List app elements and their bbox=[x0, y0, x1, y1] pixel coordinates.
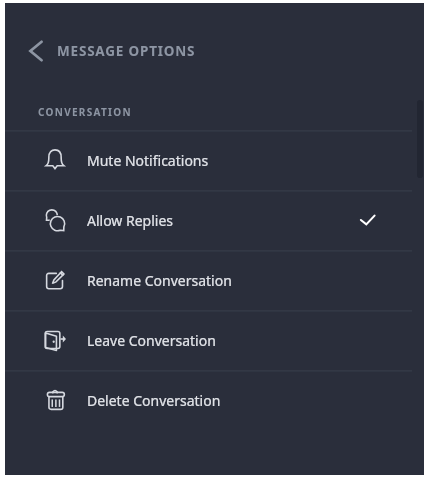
button[interactable]: Back bbox=[17, 34, 55, 68]
staticText: Allow Replies bbox=[87, 211, 174, 230]
staticText: Mute Notifications bbox=[87, 151, 209, 170]
button[interactable]: Allow Replies bbox=[5, 190, 424, 250]
button[interactable]: Leave Conversation bbox=[5, 310, 424, 370]
button[interactable]: Delete Conversation bbox=[5, 370, 424, 430]
staticText: Leave Conversation bbox=[87, 331, 216, 350]
button[interactable]: Rename Conversation bbox=[5, 250, 424, 310]
staticText: Rename Conversation bbox=[87, 271, 232, 290]
staticText: Delete Conversation bbox=[87, 391, 221, 410]
other: Enabled bbox=[356, 209, 378, 231]
button[interactable]: Mute Notifications bbox=[5, 130, 424, 190]
staticText: CONVERSATION bbox=[38, 105, 132, 119]
staticText: MESSAGE OPTIONS bbox=[57, 42, 196, 60]
